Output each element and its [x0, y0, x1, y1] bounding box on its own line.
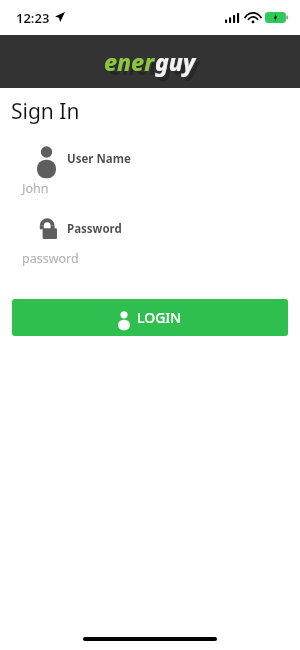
- staticText: ener: [104, 46, 155, 77]
- staticText: User Name: [67, 151, 131, 167]
- staticText: John: [22, 180, 49, 197]
- button[interactable]: John: [0, 177, 300, 199]
- staticText: Sign In: [11, 97, 80, 126]
- button[interactable]: LOGIN: [12, 299, 288, 336]
- button[interactable]: password: [0, 247, 300, 269]
- staticText: Password: [67, 221, 122, 237]
- staticText: 12:23: [16, 9, 50, 27]
- staticText: password: [22, 250, 79, 267]
- staticText: energuy: [109, 50, 199, 81]
- staticText: guy: [155, 46, 196, 77]
- staticText: LOGIN: [137, 308, 182, 327]
- other: Home indicator: [83, 637, 217, 641]
